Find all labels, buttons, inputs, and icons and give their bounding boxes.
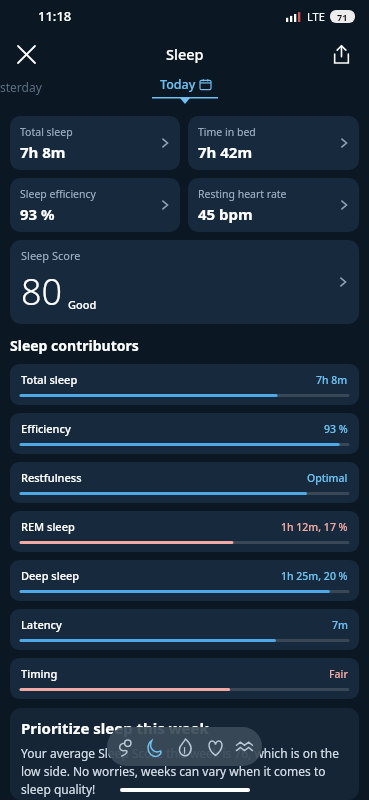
staticText: Sleep contributors	[10, 336, 139, 355]
button[interactable]: Sleep	[140, 732, 170, 762]
button[interactable]: Sleep efficiency	[10, 178, 180, 232]
button[interactable]: Resting heart rate	[188, 178, 359, 232]
button[interactable]: Restfulness	[10, 462, 359, 503]
button[interactable]: Close	[8, 36, 44, 72]
staticText: 93 %	[20, 204, 55, 224]
button[interactable]: Total sleep	[10, 364, 359, 405]
button[interactable]: Today	[160, 76, 211, 93]
button[interactable]: Trends	[230, 732, 259, 762]
button[interactable]: Efficiency	[10, 413, 359, 454]
staticText: Total sleep	[20, 125, 73, 139]
staticText: 1h 12m, 17 %	[281, 520, 348, 534]
staticText: Restfulness	[21, 470, 82, 485]
staticText: REM sleep	[21, 519, 75, 534]
staticText: LTE	[307, 9, 325, 24]
staticText: Efficiency	[21, 421, 71, 436]
staticText: 7h 8m	[316, 373, 348, 387]
staticText: Fair	[329, 667, 348, 681]
button[interactable]: Share	[323, 36, 359, 72]
button[interactable]: Latency	[10, 609, 359, 650]
button[interactable]: Heart	[200, 732, 230, 762]
staticText: Time in bed	[198, 125, 256, 139]
button[interactable]: REM sleep	[10, 511, 359, 552]
staticText: 71	[337, 11, 348, 23]
staticText: sterday	[0, 79, 42, 95]
staticText: Your average Sleep Score this week is 76…	[21, 745, 348, 798]
staticText: Good	[68, 297, 97, 312]
staticText: Resting heart rate	[198, 187, 287, 201]
staticText: 7h 42m	[198, 142, 253, 162]
button[interactable]: Activity	[170, 732, 200, 762]
button[interactable]: Prioritize sleep this week	[10, 708, 359, 800]
button[interactable]: Deep sleep	[10, 560, 359, 601]
staticText: 7h 8m	[20, 142, 66, 162]
staticText: 80	[21, 267, 63, 316]
staticText: Today	[160, 76, 196, 93]
staticText: 1h 25m, 20 %	[281, 569, 348, 583]
staticText: Timing	[21, 666, 58, 681]
staticText: Optimal	[307, 471, 348, 485]
button[interactable]: Timing	[10, 658, 359, 699]
button[interactable]: Time in bed	[188, 116, 359, 170]
button[interactable]: Sleep Score	[10, 240, 359, 324]
staticText: 7m	[332, 618, 348, 632]
staticText: Deep sleep	[21, 568, 80, 583]
button[interactable]: Readiness	[110, 732, 140, 762]
staticText: Prioritize sleep this week	[21, 718, 209, 738]
staticText: Sleep efficiency	[20, 187, 96, 201]
staticText: Total sleep	[21, 372, 78, 387]
staticText: Sleep	[166, 44, 204, 64]
staticText: 93 %	[324, 422, 348, 436]
staticText: 45 bpm	[198, 204, 253, 224]
staticText: Sleep Score	[21, 248, 81, 263]
staticText: Latency	[21, 617, 62, 632]
button[interactable]: Total sleep	[10, 116, 180, 170]
staticText: 11:18	[38, 7, 72, 25]
